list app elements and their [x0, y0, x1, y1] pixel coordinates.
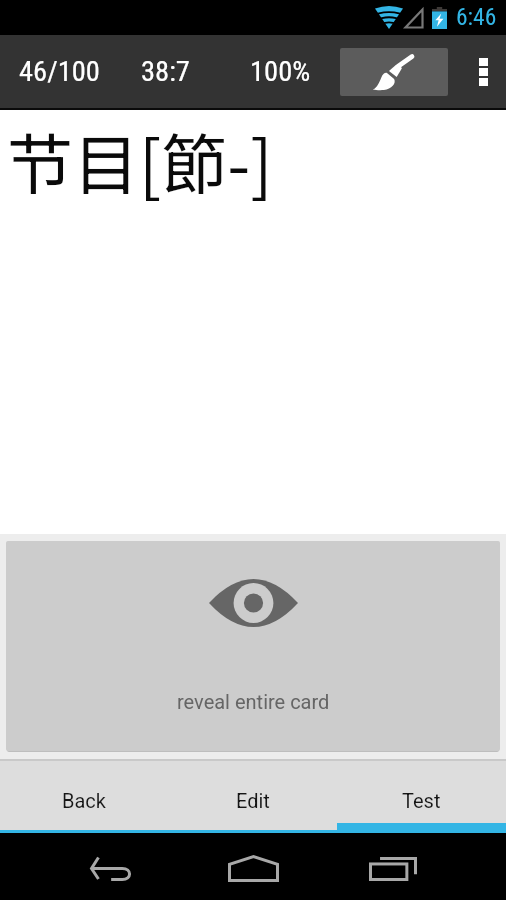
staticText: 100% — [250, 55, 311, 88]
button[interactable]: Back — [68, 833, 158, 900]
button[interactable]: Test — [337, 759, 506, 833]
staticText: 节目[節-] — [7, 112, 273, 208]
button[interactable]: Back — [0, 759, 168, 833]
button[interactable]: reveal entire card — [6, 541, 500, 751]
button[interactable]: Home — [208, 833, 298, 900]
button[interactable]: Draw — [340, 48, 448, 96]
button[interactable]: Edit — [168, 759, 337, 833]
staticText: reveal entire card — [177, 690, 330, 713]
staticText: 38:7 — [141, 55, 190, 88]
button[interactable]: Recent apps — [348, 833, 438, 900]
staticText: Back — [62, 789, 106, 812]
staticText: Edit — [236, 789, 270, 812]
staticText: 6:46 — [456, 3, 497, 31]
staticText: 46/100 — [19, 55, 100, 88]
button[interactable]: More options — [460, 35, 506, 108]
staticText: Test — [402, 789, 441, 812]
